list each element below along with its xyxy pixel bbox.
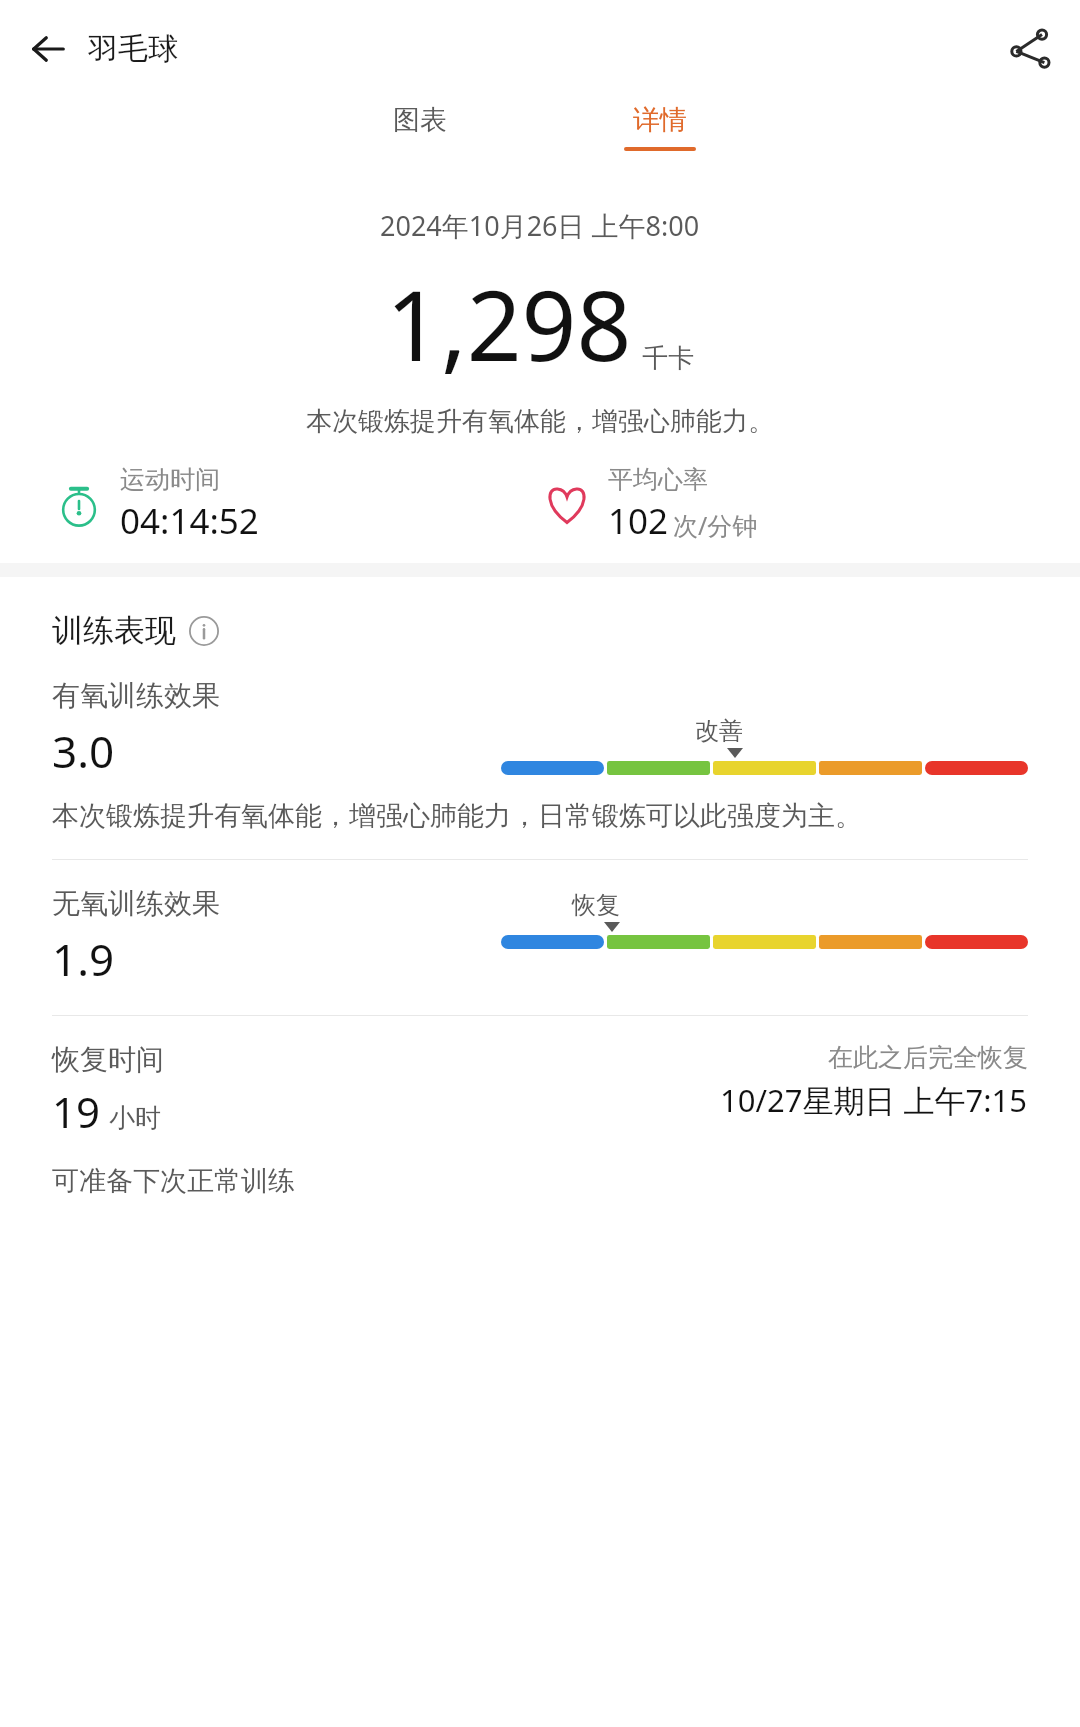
staticText: 训练表现	[52, 611, 176, 650]
staticText: 在此之后完全恢复	[828, 1042, 1028, 1073]
staticText: 运动时间	[120, 464, 220, 495]
staticText: 19	[52, 1083, 101, 1140]
staticText: 图表	[393, 103, 447, 137]
staticText: 次/分钟	[673, 508, 758, 542]
staticText: 1,298	[386, 258, 632, 389]
staticText: 千卡	[642, 342, 694, 375]
staticText: 3.0	[52, 721, 115, 781]
button[interactable]: Back	[22, 23, 74, 75]
staticText: 可准备下次正常训练	[52, 1164, 295, 1198]
staticText: 无氧训练效果	[52, 886, 220, 921]
button[interactable]: 图表	[364, 97, 476, 157]
staticText: 恢复	[572, 890, 620, 920]
staticText: 10/27星期日 上午7:15	[720, 1079, 1028, 1121]
staticText: 平均心率	[608, 464, 708, 495]
staticText: 详情	[633, 103, 687, 137]
staticText: 102	[608, 497, 669, 545]
button[interactable]: Share	[1002, 21, 1058, 77]
staticText: 恢复时间	[52, 1042, 164, 1077]
staticText: 小时	[109, 1102, 161, 1135]
staticText: 有氧训练效果	[52, 678, 220, 713]
staticText: 改善	[695, 716, 743, 746]
staticText: 1.9	[52, 929, 115, 989]
staticText: 本次锻炼提升有氧体能，增强心肺能力。	[306, 405, 774, 438]
button[interactable]: Info	[188, 615, 220, 647]
staticText: 2024年10月26日 上午8:00	[380, 207, 700, 244]
staticText: 羽毛球	[88, 30, 178, 68]
button[interactable]: 详情	[604, 97, 716, 157]
staticText: 04:14:52	[120, 497, 259, 545]
staticText: 本次锻炼提升有氧体能，增强心肺能力，日常锻炼可以此强度为主。	[52, 799, 862, 833]
